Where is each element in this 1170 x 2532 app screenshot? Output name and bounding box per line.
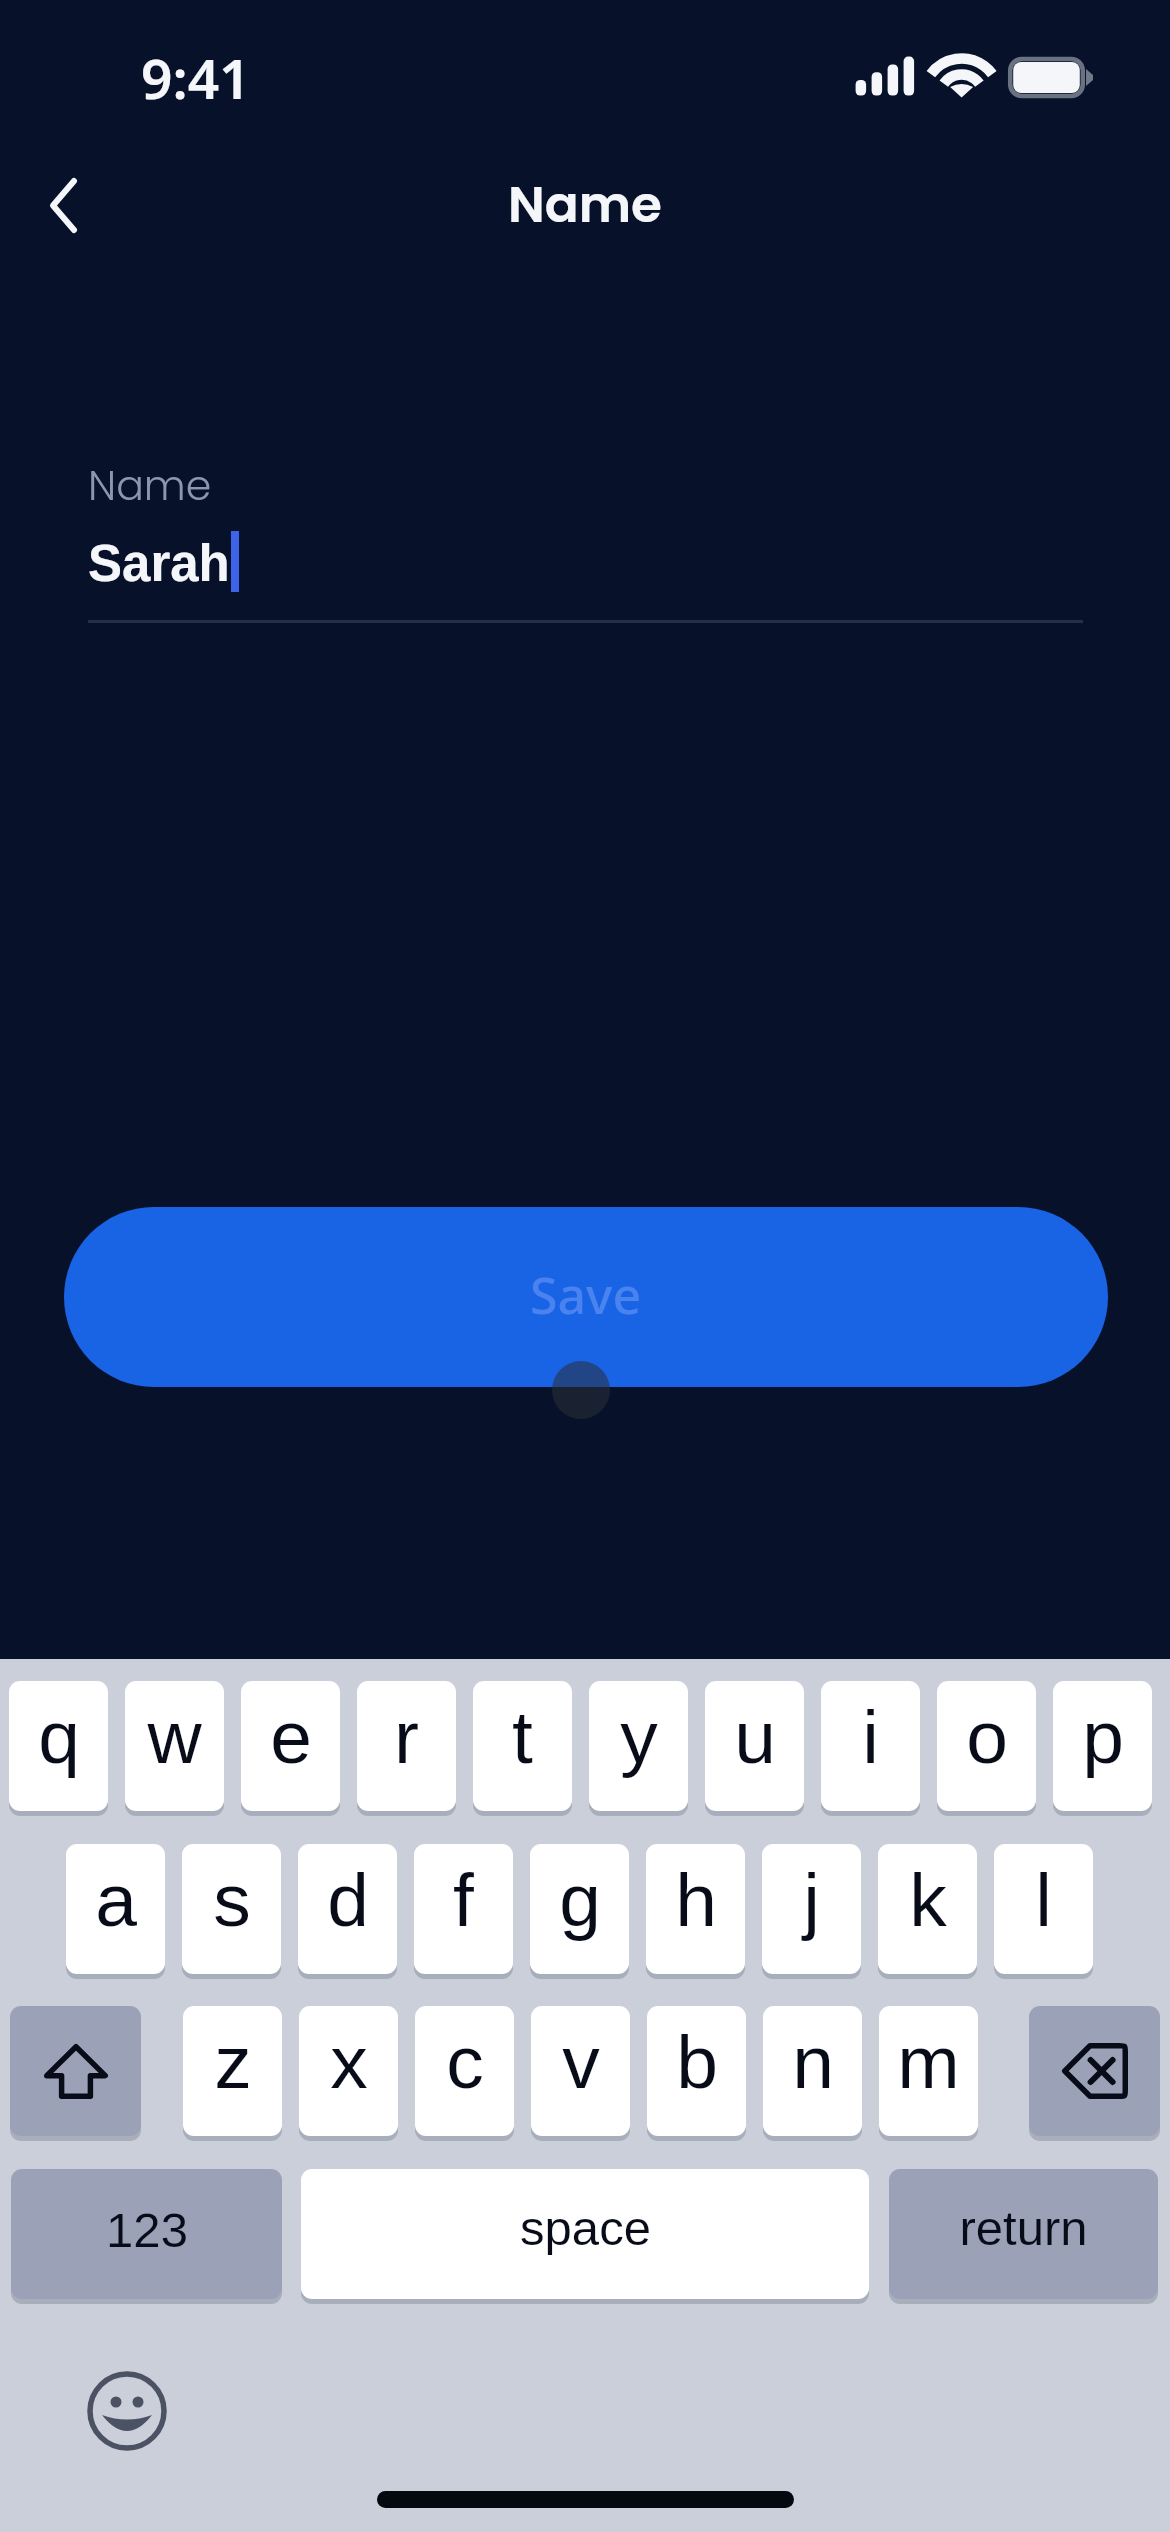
staticText: Save: [530, 1261, 642, 1329]
button[interactable]: Shift: [10, 2006, 141, 2136]
staticText: a: [95, 1858, 137, 1942]
staticText: t: [512, 1695, 533, 1779]
staticText: 123: [106, 2203, 188, 2258]
staticText: Name: [508, 170, 662, 240]
staticText: m: [897, 2020, 960, 2104]
button[interactable]: Back: [18, 160, 108, 250]
button[interactable]: y: [589, 1681, 688, 1811]
button[interactable]: t: [473, 1681, 572, 1811]
button[interactable]: m: [879, 2006, 978, 2136]
staticText: i: [862, 1695, 879, 1779]
button[interactable]: a: [66, 1844, 165, 1974]
button[interactable]: q: [9, 1681, 108, 1811]
staticText: k: [909, 1858, 947, 1942]
staticText: Name: [88, 457, 212, 514]
staticText: q: [38, 1695, 80, 1779]
staticText: d: [327, 1858, 369, 1942]
button[interactable]: Backspace: [1029, 2006, 1160, 2136]
button[interactable]: e: [241, 1681, 340, 1811]
staticText: r: [394, 1695, 419, 1779]
button[interactable]: p: [1053, 1681, 1152, 1811]
staticText: p: [1082, 1695, 1124, 1779]
button[interactable]: k: [878, 1844, 977, 1974]
button[interactable]: space: [301, 2169, 869, 2299]
button[interactable]: 123: [11, 2169, 282, 2299]
staticText: h: [675, 1858, 717, 1942]
staticText: j: [803, 1858, 820, 1942]
staticText: g: [559, 1858, 601, 1942]
button[interactable]: Emoji keyboard: [82, 2366, 172, 2456]
button[interactable]: u: [705, 1681, 804, 1811]
button[interactable]: n: [763, 2006, 862, 2136]
staticText: l: [1035, 1858, 1052, 1942]
button[interactable]: i: [821, 1681, 920, 1811]
button[interactable]: v: [531, 2006, 630, 2136]
button[interactable]: o: [937, 1681, 1036, 1811]
staticText: w: [147, 1695, 202, 1779]
staticText: f: [453, 1858, 474, 1942]
staticText: b: [676, 2020, 718, 2104]
button[interactable]: r: [357, 1681, 456, 1811]
staticText: 9:41: [141, 40, 251, 115]
staticText: s: [213, 1858, 251, 1942]
button[interactable]: b: [647, 2006, 746, 2136]
button[interactable]: z: [183, 2006, 282, 2136]
button[interactable]: l: [994, 1844, 1093, 1974]
staticText: return: [959, 2201, 1088, 2256]
button[interactable]: g: [530, 1844, 629, 1974]
button[interactable]: Save: [64, 1207, 1108, 1387]
staticText: x: [330, 2020, 368, 2104]
button[interactable]: w: [125, 1681, 224, 1811]
button[interactable]: j: [762, 1844, 861, 1974]
staticText: u: [734, 1695, 776, 1779]
staticText: c: [446, 2020, 484, 2104]
button[interactable]: d: [298, 1844, 397, 1974]
button[interactable]: return: [889, 2169, 1158, 2299]
button[interactable]: x: [299, 2006, 398, 2136]
staticText: e: [270, 1695, 312, 1779]
button[interactable]: s: [182, 1844, 281, 1974]
staticText: o: [966, 1695, 1008, 1779]
staticText: Sarah: [88, 535, 230, 592]
button[interactable]: h: [646, 1844, 745, 1974]
staticText: n: [792, 2020, 834, 2104]
button[interactable]: f: [414, 1844, 513, 1974]
staticText: y: [620, 1695, 658, 1779]
staticText: v: [562, 2020, 600, 2104]
button[interactable]: c: [415, 2006, 514, 2136]
staticText: space: [520, 2201, 651, 2256]
staticText: z: [214, 2020, 252, 2104]
